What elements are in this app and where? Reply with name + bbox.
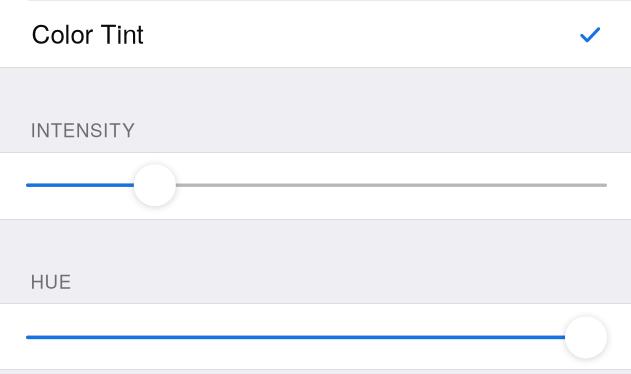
staticText: Color Tint xyxy=(31,14,143,51)
staticText: HUE xyxy=(30,267,71,294)
staticText: INTENSITY xyxy=(30,116,134,142)
button[interactable]: Color Tint xyxy=(0,0,631,67)
